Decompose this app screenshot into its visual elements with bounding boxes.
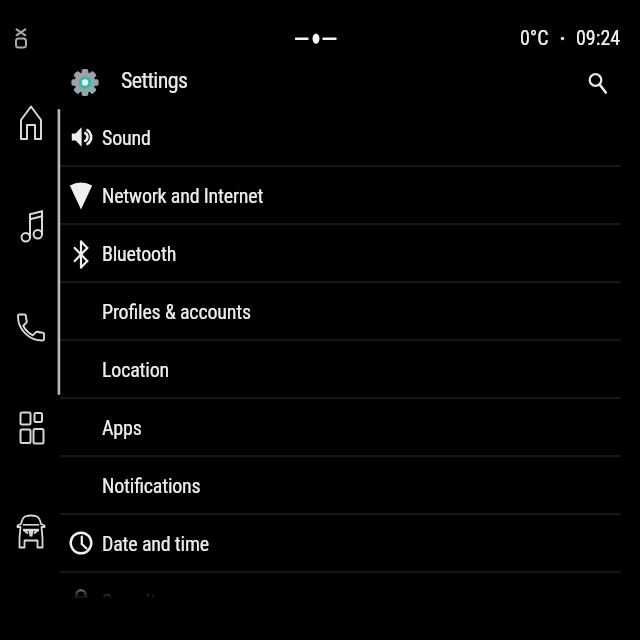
staticText: Sound	[102, 126, 151, 149]
staticText: Settings	[121, 68, 188, 94]
button[interactable]: Notifications	[56, 456, 640, 514]
button[interactable]	[11, 103, 51, 143]
staticText: 09:24	[576, 26, 621, 49]
button[interactable]: Apps	[56, 398, 640, 456]
staticText: Profiles & accounts	[102, 300, 251, 323]
staticText: Apps	[102, 416, 142, 439]
button[interactable]	[11, 206, 51, 246]
staticText: Notifications	[102, 474, 201, 497]
staticText: 0°C	[520, 26, 549, 49]
button[interactable]: Location	[56, 340, 640, 398]
button[interactable]: Date and time	[56, 514, 640, 572]
staticText: Security	[102, 590, 164, 613]
button[interactable]: Bluetooth	[56, 224, 640, 282]
button[interactable]	[578, 62, 614, 98]
staticText: Date and time	[102, 532, 209, 555]
button[interactable]: Sound	[56, 108, 640, 166]
button[interactable]: Network and Internet	[56, 166, 640, 224]
button[interactable]: Profiles & accounts	[56, 282, 640, 340]
staticText: Bluetooth	[102, 242, 177, 265]
button[interactable]	[11, 407, 51, 447]
staticText: Location	[102, 358, 170, 381]
button[interactable]	[11, 307, 51, 347]
button[interactable]: Security	[56, 572, 640, 630]
button[interactable]	[11, 511, 51, 551]
staticText: Network and Internet	[102, 184, 264, 207]
